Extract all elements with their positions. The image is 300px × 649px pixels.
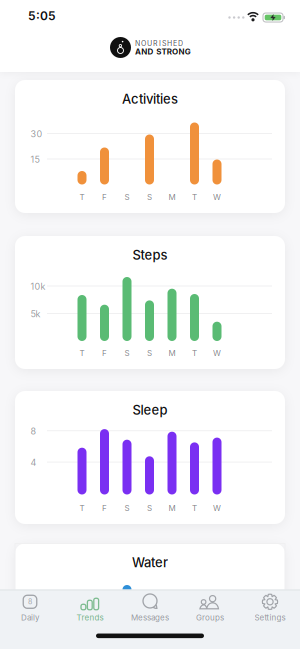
button[interactable]: Sleep xyxy=(15,391,285,524)
staticText: Sleep xyxy=(132,402,167,418)
button[interactable]: Settings xyxy=(240,591,300,625)
button[interactable]: Messages xyxy=(120,591,180,625)
staticText: F xyxy=(102,192,107,202)
staticText: 5:05 xyxy=(28,9,56,23)
staticText: AND STRONG xyxy=(135,47,191,56)
button[interactable]: 8 xyxy=(0,591,60,625)
staticText: W xyxy=(213,192,221,202)
staticText: W xyxy=(213,503,221,513)
staticText: Settings xyxy=(254,613,285,622)
staticText: M xyxy=(168,348,175,358)
button[interactable]: Steps xyxy=(15,236,285,369)
staticText: 10k xyxy=(30,281,45,292)
staticText: S xyxy=(147,503,152,513)
staticText: 8 xyxy=(28,598,32,606)
staticText: S xyxy=(124,348,129,358)
staticText: T xyxy=(79,348,84,358)
staticText: 15 xyxy=(30,154,39,165)
button[interactable]: Groups xyxy=(180,591,240,625)
staticText: S xyxy=(147,192,152,202)
staticText: T xyxy=(79,192,84,202)
button[interactable]: Water xyxy=(15,543,285,649)
staticText: Messages xyxy=(131,613,169,622)
staticText: Activities xyxy=(122,91,178,107)
staticText: T xyxy=(192,192,197,202)
staticText: F xyxy=(102,348,107,358)
button[interactable]: Trends xyxy=(60,591,120,625)
staticText: 30 xyxy=(30,129,42,139)
staticText: S xyxy=(147,348,152,358)
staticText: W xyxy=(213,348,221,358)
staticText: S xyxy=(124,192,129,202)
staticText: 4 xyxy=(30,457,36,468)
staticText: NOURISHED xyxy=(135,39,183,48)
staticText: F xyxy=(102,503,107,513)
button[interactable]: Activities xyxy=(15,80,285,213)
staticText: Groups xyxy=(196,613,224,622)
staticText: M xyxy=(168,192,175,202)
staticText: 8 xyxy=(30,426,36,436)
staticText: T xyxy=(192,348,197,358)
staticText: S xyxy=(124,503,129,513)
staticText: Steps xyxy=(132,247,167,263)
staticText: T xyxy=(79,503,84,513)
staticText: T xyxy=(192,503,197,513)
staticText: Water xyxy=(132,555,168,570)
staticText: M xyxy=(168,503,175,513)
staticText: Trends xyxy=(76,613,103,622)
staticText: 5k xyxy=(30,309,40,319)
staticText: Daily xyxy=(21,613,39,622)
